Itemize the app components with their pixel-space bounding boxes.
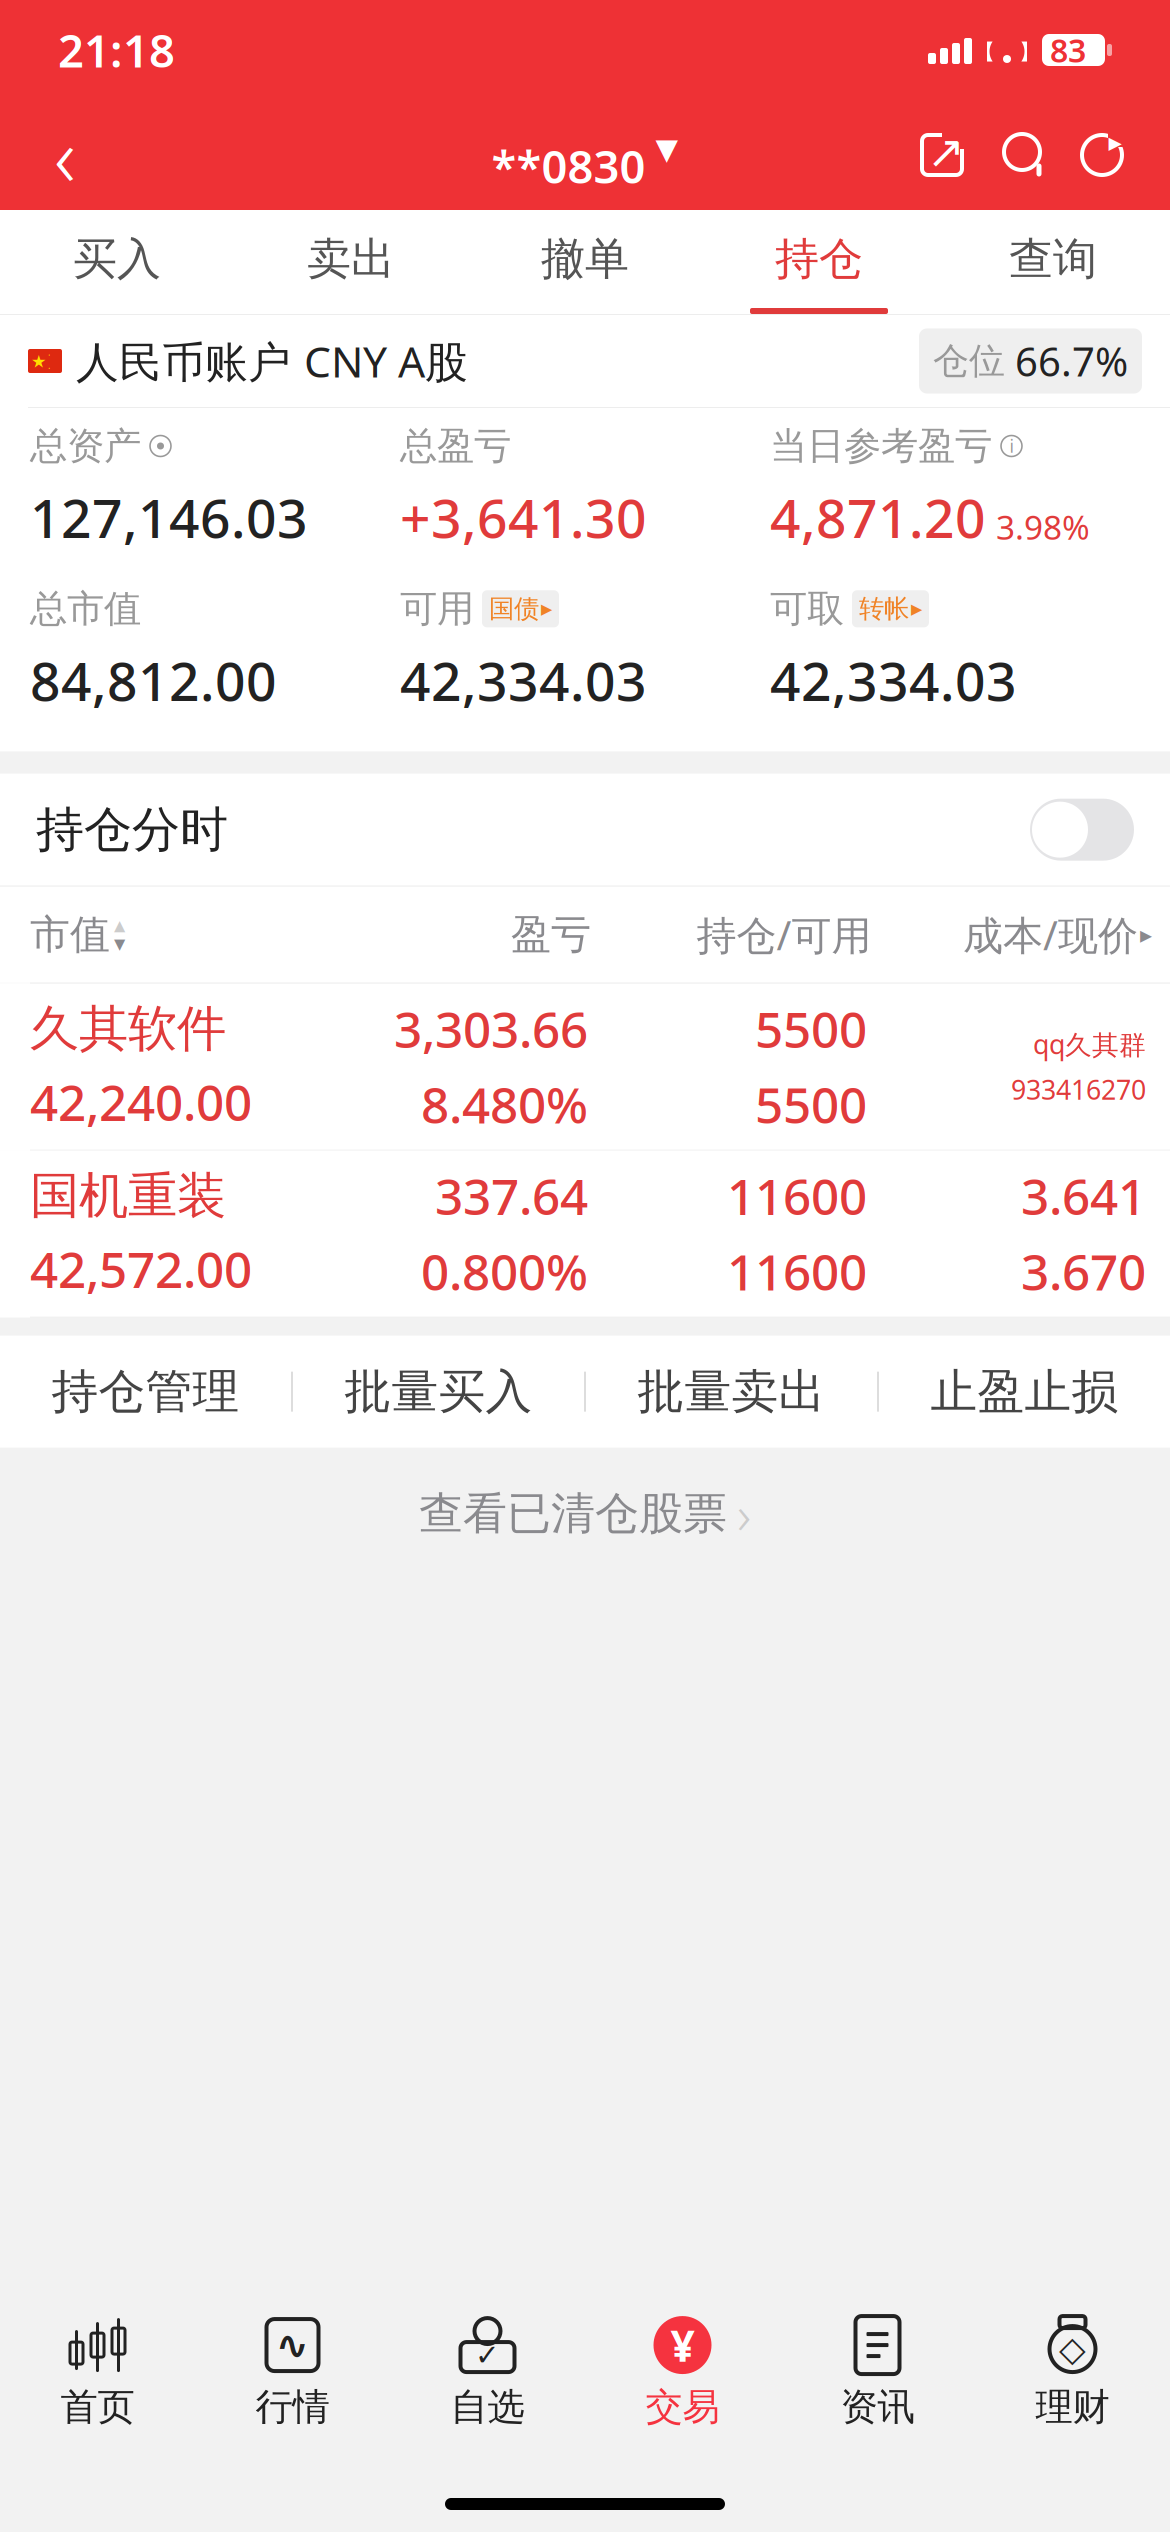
staticText: 国债 <box>489 593 539 624</box>
staticText: 查询 <box>1009 232 1097 286</box>
button[interactable]: 查询 <box>936 210 1170 314</box>
staticText: 可取 <box>770 586 844 632</box>
staticText: 久其软件 <box>30 999 226 1059</box>
button[interactable]: 转帐 <box>852 590 929 627</box>
staticText: 42,334.03 <box>400 645 647 716</box>
staticText: ▸ <box>1140 921 1152 948</box>
staticText: 自选 <box>450 2384 524 2430</box>
staticText: 止盈止损 <box>930 1363 1118 1420</box>
button[interactable]: Back <box>20 111 110 199</box>
staticText: 当日参考盈亏 <box>770 423 992 469</box>
staticText: ‹ <box>54 100 76 210</box>
staticText: 127,146.03 <box>30 482 308 553</box>
staticText: 84,812.00 <box>30 645 277 716</box>
staticText: 3,303.66 <box>394 996 588 1062</box>
button[interactable]: 久其软件 <box>0 984 1170 1151</box>
button[interactable]: Share <box>918 131 966 179</box>
staticText: 933416270 <box>1011 1072 1146 1107</box>
button[interactable]: Refresh <box>1078 131 1126 179</box>
button[interactable]: 国机重装 <box>0 1151 1170 1318</box>
button[interactable]: 资讯 <box>780 2308 975 2438</box>
staticText: 持仓 <box>775 232 863 286</box>
button[interactable]: 批量卖出 <box>586 1336 877 1448</box>
staticText: 持仓分时 <box>36 800 228 859</box>
staticText: 5500 <box>755 1072 867 1137</box>
staticText: ▲ <box>114 917 125 934</box>
staticText: ★ <box>31 352 47 371</box>
staticText: 成本/现价 <box>963 908 1138 961</box>
staticText: ∿ <box>275 2322 309 2368</box>
staticText: 3.98% <box>996 505 1090 549</box>
staticText: 11600 <box>727 1239 867 1304</box>
staticText: · <box>48 362 51 374</box>
button[interactable]: ✓ <box>390 2308 585 2438</box>
staticText: 0.800% <box>421 1239 588 1304</box>
button[interactable]: 持仓分时 <box>1030 799 1134 861</box>
button[interactable]: ¥ <box>585 2308 780 2438</box>
button[interactable]: 买入 <box>0 210 234 314</box>
staticText: 国机重装 <box>30 1166 226 1226</box>
staticText: +3,641.30 <box>400 482 647 553</box>
staticText: ▼ <box>655 132 678 166</box>
staticText: 资讯 <box>840 2384 914 2430</box>
staticText: 3.670 <box>1021 1239 1146 1304</box>
staticText: 42,240.00 <box>30 1069 252 1135</box>
staticText: 42,572.00 <box>30 1236 252 1302</box>
staticText: 人民币账户 CNY A股 <box>76 333 468 389</box>
staticText: ¥ <box>670 2317 694 2373</box>
staticText: 理财 <box>1035 2384 1109 2430</box>
staticText: ▶ <box>911 600 922 617</box>
staticText: 批量卖出 <box>637 1363 825 1420</box>
button[interactable]: 止盈止损 <box>879 1336 1170 1448</box>
staticText: 市值 <box>30 910 110 959</box>
button[interactable]: 持仓管理 <box>0 1336 291 1448</box>
staticText: ▸ <box>1108 127 1121 157</box>
staticText: qq久其群 <box>1033 1026 1146 1062</box>
staticText: 5500 <box>755 996 867 1062</box>
button[interactable]: ◇ <box>975 2308 1170 2438</box>
staticText: › <box>737 1478 751 1549</box>
staticText: 交易 <box>645 2384 719 2430</box>
button[interactable]: 国债 <box>482 590 559 627</box>
staticText: 可用 <box>400 586 474 632</box>
staticText: 83 <box>1050 29 1086 71</box>
staticText: 盈亏 <box>511 910 591 959</box>
staticText: ◇ <box>1059 2329 1086 2369</box>
staticText: ▶ <box>541 600 552 617</box>
staticText: 持仓/可用 <box>696 908 871 961</box>
staticText: 3.641 <box>1021 1163 1146 1229</box>
button[interactable]: 持仓 <box>702 210 936 314</box>
staticText: 仓位 <box>933 339 1005 383</box>
button[interactable]: 卖出 <box>234 210 468 314</box>
staticText: 批量买入 <box>344 1363 532 1420</box>
staticText: i <box>1009 434 1013 457</box>
staticText: ✓ <box>475 2338 500 2372</box>
staticText: 42,334.03 <box>770 645 1017 716</box>
button[interactable]: ∿ <box>195 2308 390 2438</box>
staticText: ↗ <box>927 126 965 178</box>
staticText: · <box>48 349 51 361</box>
staticText: 卖出 <box>307 232 395 286</box>
staticText: 行情 <box>255 2384 329 2430</box>
button[interactable]: 查看已清仓股票 <box>0 1448 1170 1580</box>
staticText: ▼ <box>114 936 125 952</box>
staticText: 总市值 <box>30 586 141 632</box>
button[interactable]: 首页 <box>0 2308 195 2438</box>
staticText: 11600 <box>727 1163 867 1229</box>
staticText: 转帐 <box>859 593 909 624</box>
staticText: 21:18 <box>58 20 175 80</box>
button[interactable]: 批量买入 <box>293 1336 584 1448</box>
staticText: 4,871.20 <box>770 482 986 553</box>
button[interactable]: Search <box>1000 130 1050 180</box>
button[interactable]: 撤单 <box>468 210 702 314</box>
staticText: 66.7% <box>1015 334 1128 387</box>
staticText: 8.480% <box>421 1072 588 1137</box>
staticText: 撤单 <box>541 232 629 286</box>
button[interactable]: **0830 <box>491 114 678 196</box>
staticText: **0830 <box>491 136 645 196</box>
staticText: 查看已清仓股票 <box>419 1487 727 1541</box>
staticText: 买入 <box>73 232 161 286</box>
staticText: 总资产 <box>30 423 141 469</box>
staticText: 总盈亏 <box>400 423 511 469</box>
staticText: 337.64 <box>435 1163 588 1229</box>
